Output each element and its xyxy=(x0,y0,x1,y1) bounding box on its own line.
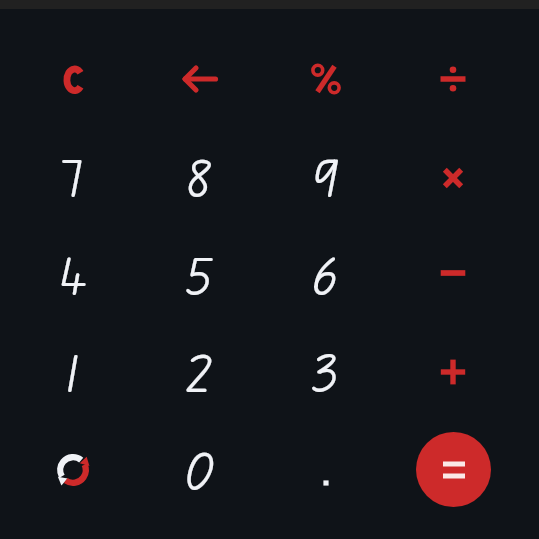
staticText: 9 xyxy=(313,142,340,210)
button[interactable]: 8 xyxy=(152,128,248,224)
button[interactable]: 1 xyxy=(25,323,121,419)
button[interactable]: 2 xyxy=(152,323,248,419)
button[interactable]: Decimal point xyxy=(284,441,368,525)
button[interactable]: Swap xyxy=(25,422,121,518)
staticText: 4 xyxy=(60,240,86,308)
button[interactable]: 9 xyxy=(278,128,374,224)
staticText: 6 xyxy=(313,240,339,308)
staticText: 1 xyxy=(63,337,84,405)
button[interactable]: Minus xyxy=(405,225,501,321)
staticText: 7 xyxy=(62,142,84,210)
button[interactable]: Percent xyxy=(278,31,374,127)
staticText: 0 xyxy=(186,435,215,503)
button[interactable]: 5 xyxy=(152,226,248,322)
button[interactable]: Backspace xyxy=(152,31,248,127)
staticText: 3 xyxy=(313,337,339,405)
button[interactable]: Clear xyxy=(25,31,121,127)
button[interactable]: Plus xyxy=(405,324,501,420)
button[interactable]: 0 xyxy=(152,421,248,517)
button[interactable]: Divide xyxy=(405,31,501,127)
staticText: 2 xyxy=(188,337,213,405)
button[interactable]: 4 xyxy=(25,226,121,322)
button[interactable]: 3 xyxy=(278,323,374,419)
button[interactable]: 6 xyxy=(278,226,374,322)
staticText: 5 xyxy=(187,240,213,308)
staticText: 8 xyxy=(188,142,212,210)
button[interactable]: Multiply xyxy=(405,130,501,226)
button[interactable]: Equals xyxy=(416,432,491,507)
button[interactable]: 7 xyxy=(25,128,121,224)
